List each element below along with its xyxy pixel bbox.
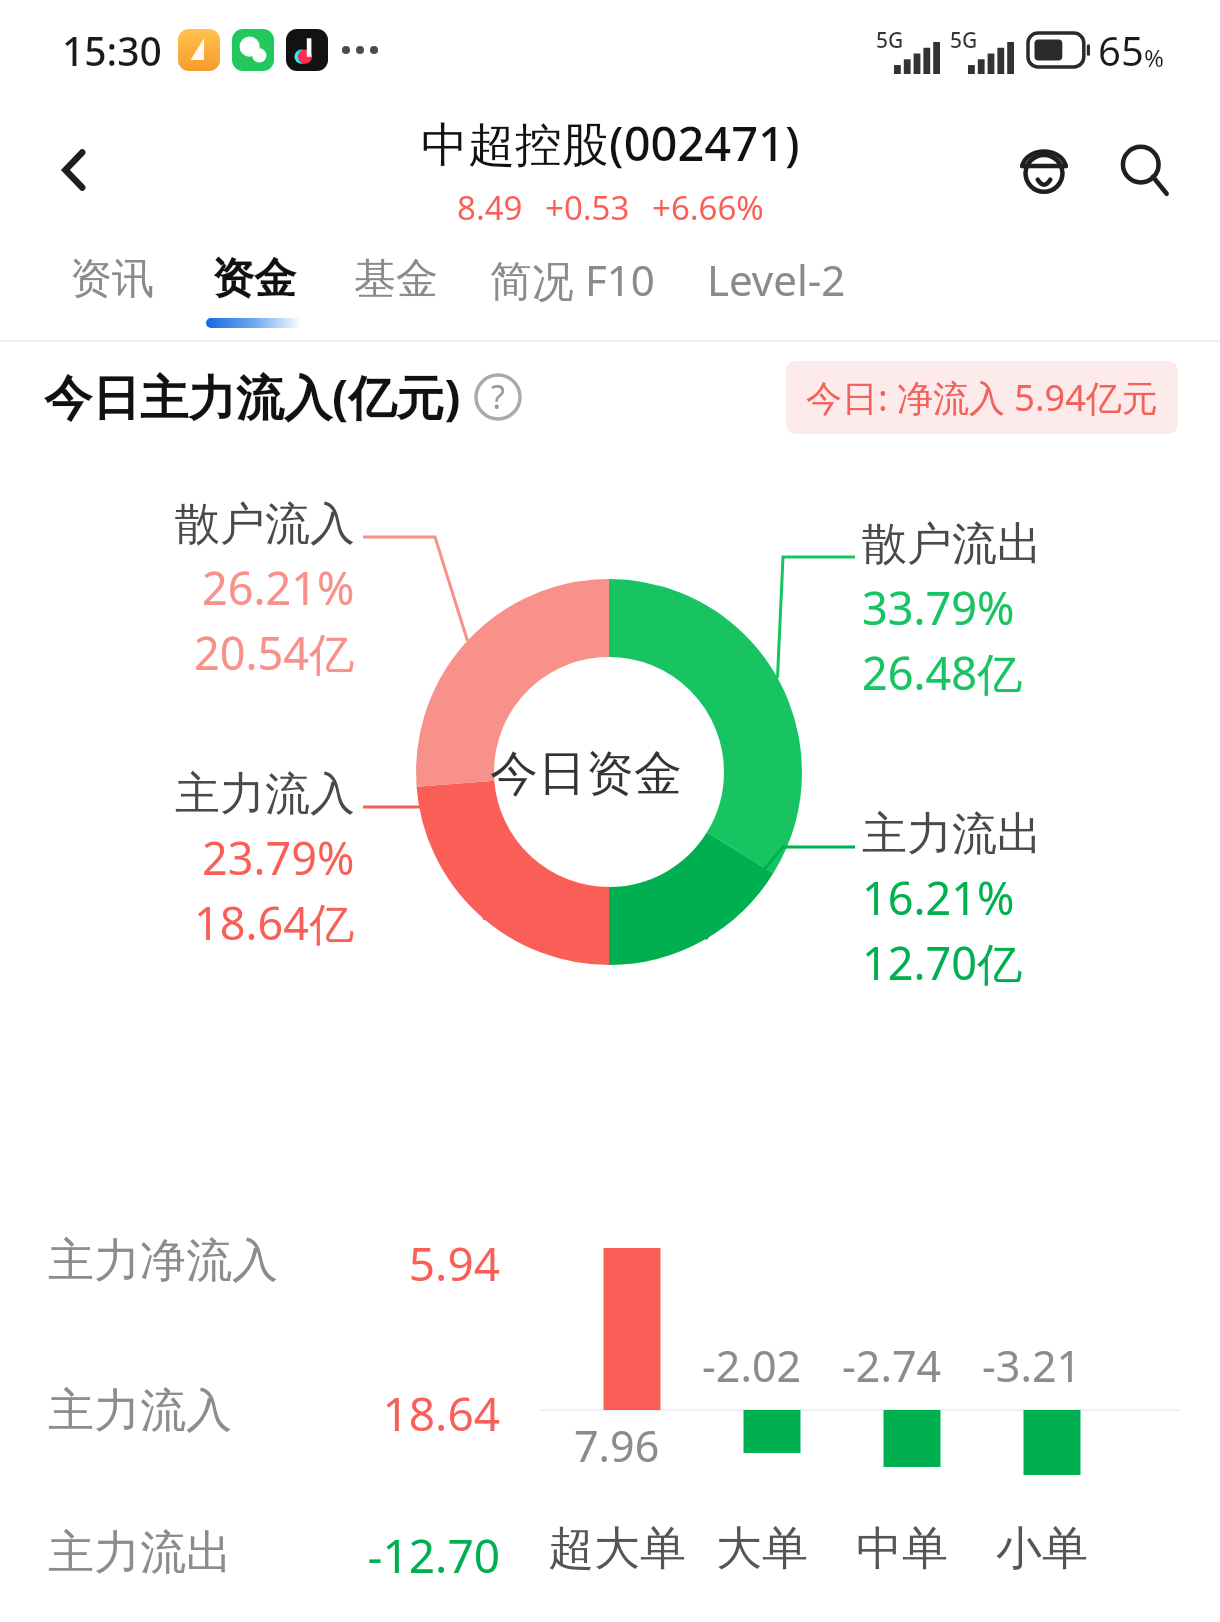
staticText: 小单: [996, 1520, 1088, 1578]
staticText: 主力流入: [175, 766, 355, 823]
staticText: 今日: 净流入 5.94亿元: [806, 373, 1158, 422]
button[interactable]: 基金: [328, 253, 464, 328]
staticText: 26.48亿: [862, 642, 1023, 703]
staticText: 20.54亿: [194, 622, 355, 683]
button[interactable]: Search: [1098, 124, 1190, 216]
button[interactable]: 简况 F10: [464, 251, 681, 330]
staticText: +6.66%: [652, 185, 764, 230]
staticText: 超大单: [548, 1520, 686, 1578]
staticText: 12.70亿: [862, 932, 1023, 993]
staticText: 资讯: [70, 253, 154, 306]
staticText: 8.49: [457, 185, 523, 230]
button[interactable]: 资金: [180, 253, 328, 328]
staticText: 主力净流入: [48, 1232, 278, 1290]
staticText: 今日资金: [490, 744, 682, 804]
staticText: 散户流入: [175, 496, 355, 553]
button[interactable]: Customer service: [998, 124, 1090, 216]
staticText: 简况 F10: [490, 251, 655, 308]
staticText: 资金: [212, 253, 296, 306]
staticText: 26.21%: [202, 557, 355, 618]
staticText: 18.64亿: [194, 892, 355, 953]
button[interactable]: Level-2: [681, 251, 872, 330]
staticText: -12.70: [310, 1524, 500, 1587]
button[interactable]: Help: [471, 370, 525, 424]
staticText: 16.21%: [862, 867, 1015, 928]
staticText: 5G: [950, 26, 978, 55]
staticText: 7.96: [574, 1416, 660, 1475]
staticText: %: [1144, 41, 1164, 74]
staticText: 5.94: [310, 1232, 500, 1295]
staticText: 中超控股(002471): [421, 111, 800, 175]
staticText: 主力流出: [48, 1524, 232, 1582]
staticText: 散户流出: [862, 516, 1042, 573]
staticText: 33.79%: [862, 577, 1015, 638]
staticText: 23.79%: [202, 827, 355, 888]
staticText: 65: [1098, 23, 1144, 77]
button[interactable]: 今日: 净流入 5.94亿元: [786, 361, 1178, 434]
staticText: 今日主力流入(亿元): [44, 364, 461, 430]
staticText: 基金: [354, 253, 438, 306]
staticText: +0.53: [545, 185, 630, 230]
staticText: Level-2: [707, 251, 846, 308]
staticText: 5G: [876, 26, 904, 55]
button[interactable]: Back: [30, 125, 120, 215]
staticText: -2.74: [842, 1336, 942, 1395]
staticText: 18.64: [310, 1382, 500, 1445]
staticText: ?: [491, 375, 505, 419]
staticText: 主力流入: [48, 1382, 232, 1440]
staticText: -3.21: [982, 1336, 1082, 1395]
staticText: -2.02: [702, 1336, 802, 1395]
staticText: 大单: [716, 1520, 808, 1578]
staticText: 主力流出: [862, 806, 1042, 863]
staticText: 15:30: [62, 24, 162, 77]
staticText: 中单: [856, 1520, 948, 1578]
button[interactable]: 资讯: [44, 253, 180, 328]
